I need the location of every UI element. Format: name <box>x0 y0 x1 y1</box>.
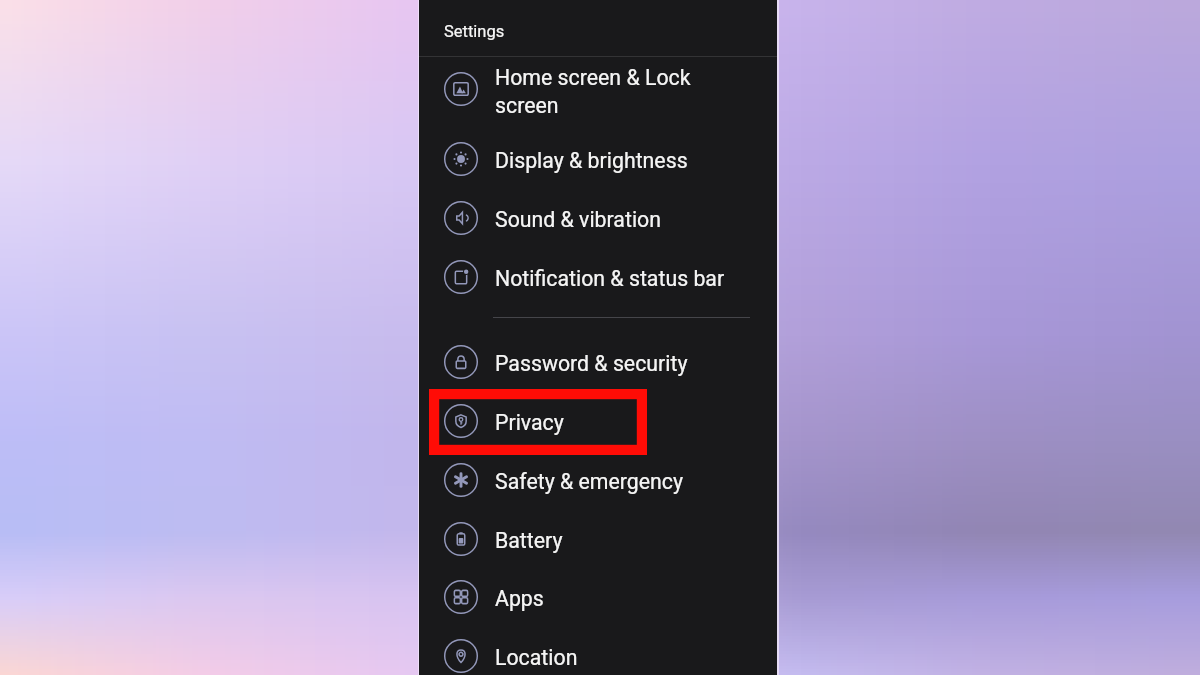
staticText: Battery <box>495 528 735 553</box>
staticText: Notification & status bar <box>495 266 735 291</box>
button[interactable]: Sound & vibration <box>419 189 777 247</box>
button[interactable]: Notification & status bar <box>419 248 777 306</box>
button[interactable]: Apps <box>419 568 777 626</box>
button[interactable]: Home screen & Lock screen <box>419 54 777 124</box>
other: Privacy highlight <box>429 389 647 455</box>
button[interactable]: Location <box>419 627 777 675</box>
staticText: Location <box>495 645 735 670</box>
staticText: Privacy <box>495 410 735 435</box>
staticText: Apps <box>495 586 735 611</box>
staticText: Settings <box>444 22 505 41</box>
staticText: Password & security <box>495 351 735 376</box>
button[interactable]: Safety & emergency <box>419 451 777 509</box>
button[interactable]: Battery <box>419 510 777 568</box>
staticText: Display & brightness <box>495 148 735 173</box>
button[interactable]: Password & security <box>419 333 777 391</box>
button[interactable]: Privacy <box>419 392 777 450</box>
staticText: Safety & emergency <box>495 469 735 494</box>
button[interactable]: Settings <box>419 0 777 56</box>
staticText: Sound & vibration <box>495 207 735 232</box>
staticText: Home screen & Lock screen <box>495 65 735 119</box>
button[interactable]: Display & brightness <box>419 130 777 188</box>
